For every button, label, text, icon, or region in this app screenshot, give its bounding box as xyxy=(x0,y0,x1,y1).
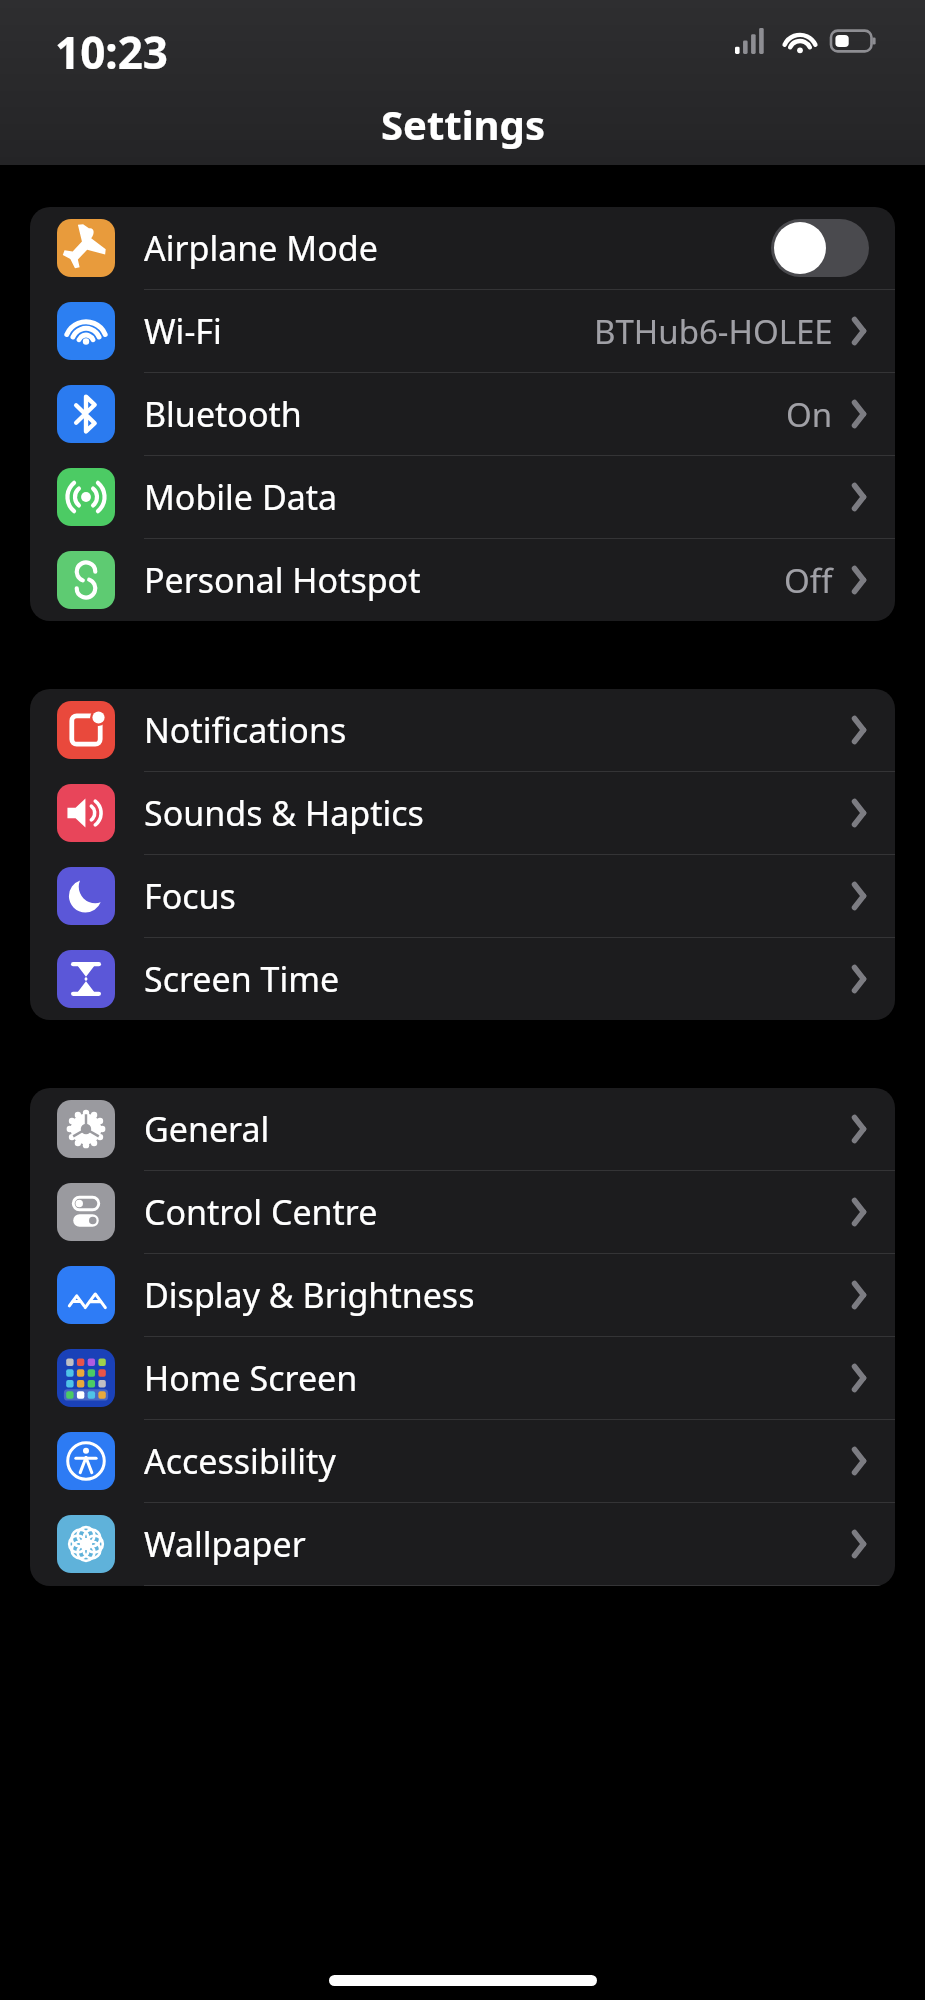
button[interactable]: Display & Brightness xyxy=(30,1254,895,1336)
staticText: Off xyxy=(784,558,833,603)
staticText: Sounds & Haptics xyxy=(144,790,424,836)
staticText: Focus xyxy=(144,873,236,919)
staticText: Airplane Mode xyxy=(144,225,378,271)
staticText: BTHub6-HOLEE xyxy=(594,309,833,354)
staticText: Personal Hotspot xyxy=(144,557,421,603)
button[interactable]: Focus xyxy=(30,855,895,937)
button[interactable]: Airplane Mode xyxy=(30,207,895,289)
staticText: On xyxy=(786,392,833,437)
staticText: General xyxy=(144,1106,270,1152)
staticText: Display & Brightness xyxy=(144,1272,475,1318)
button[interactable]: Sounds & Haptics xyxy=(30,772,895,854)
staticText: Notifications xyxy=(144,707,347,753)
button[interactable]: Mobile Data xyxy=(30,456,895,538)
button[interactable]: Home Screen xyxy=(30,1337,895,1419)
staticText: Control Centre xyxy=(144,1189,378,1235)
button[interactable]: Wallpaper xyxy=(30,1503,895,1585)
button[interactable]: Personal Hotspot xyxy=(30,539,895,621)
staticText: Bluetooth xyxy=(144,391,302,437)
staticText: Accessibility xyxy=(144,1438,336,1484)
button[interactable]: Airplane Mode toggle xyxy=(771,219,869,277)
button[interactable]: Control Centre xyxy=(30,1171,895,1253)
staticText: Mobile Data xyxy=(144,474,338,520)
staticText: 10:23 xyxy=(55,22,169,82)
staticText: Screen Time xyxy=(144,956,340,1002)
button[interactable]: Notifications xyxy=(30,689,895,771)
staticText: Wallpaper xyxy=(144,1521,306,1567)
button[interactable]: Bluetooth xyxy=(30,373,895,455)
button[interactable]: General xyxy=(30,1088,895,1170)
staticText: Settings xyxy=(381,97,545,151)
staticText: Home Screen xyxy=(144,1355,358,1401)
button[interactable]: Screen Time xyxy=(30,938,895,1020)
button[interactable]: Wi-Fi xyxy=(30,290,895,372)
button[interactable]: Accessibility xyxy=(30,1420,895,1502)
staticText: Wi-Fi xyxy=(144,308,222,354)
